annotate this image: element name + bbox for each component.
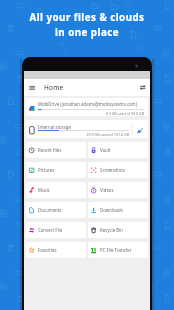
button[interactable]: Pictures (26, 162, 86, 178)
staticText: Documents (38, 207, 62, 213)
button[interactable]: MobiDrive (jonathan.adams@mobisystems.co… (26, 98, 148, 116)
staticText: MobiDrive (jonathan.adams@mobisystems.co… (38, 101, 137, 107)
button[interactable]: Open navigation menu (24, 81, 37, 94)
staticText: Internal storage (38, 124, 71, 130)
staticText: Favorites (38, 247, 57, 253)
button[interactable]: Music (26, 182, 86, 198)
button[interactable]: Recycle Bin (88, 222, 148, 238)
button[interactable]: Screenshots (88, 162, 148, 178)
button[interactable]: Vault (88, 142, 148, 158)
staticText: Music (38, 187, 50, 193)
staticText: Pictures (38, 167, 55, 173)
staticText: Recycle Bin (100, 227, 123, 233)
staticText: Vault (100, 147, 111, 153)
staticText: Screenshots (100, 167, 125, 173)
staticText: Videos (100, 187, 114, 193)
staticText: in one place (0, 26, 174, 39)
staticText: Convert File (38, 227, 63, 233)
button[interactable]: Documents (26, 202, 86, 218)
button[interactable]: Favorites (26, 242, 86, 258)
button[interactable]: Recent files (26, 142, 86, 158)
button[interactable]: Downloads (88, 202, 148, 218)
button[interactable]: Convert File (26, 222, 86, 238)
button[interactable]: Sort and display options (136, 81, 149, 94)
staticText: Home (44, 83, 64, 92)
staticText: All your files & clouds (0, 11, 174, 24)
staticText: 29.9 GB used of 131.4 GB (66, 132, 129, 137)
button[interactable]: Internal storage (26, 120, 148, 138)
staticText: PC File Transfer (100, 247, 132, 253)
staticText: 0.3 GB used of 50.0 GB (66, 111, 144, 116)
button[interactable]: PC File Transfer (88, 242, 148, 258)
staticText: Downloads (100, 207, 123, 213)
staticText: Recent files (38, 147, 62, 153)
button[interactable]: Videos (88, 182, 148, 198)
